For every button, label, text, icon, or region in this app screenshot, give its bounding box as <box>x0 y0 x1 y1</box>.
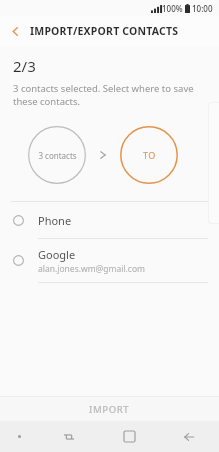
staticText: 3 contacts <box>38 150 77 161</box>
button[interactable]: Home <box>99 421 159 452</box>
button[interactable]: Back <box>159 421 219 452</box>
staticText: alan.jones.wm@gmail.com <box>38 263 146 275</box>
button[interactable]: TO <box>120 126 178 184</box>
button[interactable]: Recent apps <box>39 421 99 452</box>
staticText: IMPORT <box>89 403 130 416</box>
button[interactable]: 3 contacts <box>28 126 86 184</box>
staticText: 3 contacts selected. Select where to sav… <box>13 82 194 108</box>
staticText: 100% <box>162 3 183 14</box>
button[interactable]: IMPORT <box>0 397 219 421</box>
staticText: TO <box>143 149 156 161</box>
button[interactable]: Phone <box>0 202 219 238</box>
staticText: IMPORT/EXPORT CONTACTS <box>30 24 179 38</box>
staticText: 2/3 <box>13 56 36 76</box>
staticText: 10:00 <box>192 3 213 14</box>
staticText: Phone <box>38 213 72 228</box>
button[interactable]: Google <box>0 239 219 282</box>
button[interactable]: Navigate up <box>0 16 30 46</box>
staticText: Google <box>38 247 76 262</box>
button[interactable]: Hide keyboard <box>0 421 39 452</box>
